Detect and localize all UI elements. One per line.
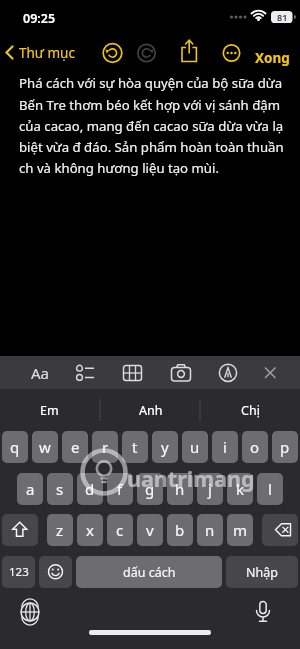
button[interactable]	[132, 38, 161, 66]
button[interactable]	[2, 514, 38, 546]
button[interactable]: y	[152, 431, 178, 463]
staticText: Aa	[31, 363, 50, 383]
button[interactable]: f	[107, 473, 133, 505]
button[interactable]	[262, 514, 298, 546]
staticText: v	[146, 520, 154, 540]
staticText: dấu cách	[123, 564, 176, 581]
button[interactable]: 123	[2, 556, 35, 588]
button[interactable]: Nhập	[226, 556, 298, 588]
staticText: x	[86, 520, 94, 540]
staticText: i	[223, 437, 227, 457]
button[interactable]: w	[32, 431, 58, 463]
staticText: b	[175, 520, 185, 540]
staticText: n	[205, 520, 215, 540]
staticText: Xong	[255, 49, 290, 67]
button[interactable]: Em	[0, 392, 99, 428]
button[interactable]: p	[272, 431, 298, 463]
button[interactable]: dấu cách	[76, 556, 222, 588]
button[interactable]: k	[227, 473, 253, 505]
button[interactable]: t	[122, 431, 148, 463]
staticText: 09:25	[23, 10, 56, 27]
staticText: e	[71, 437, 80, 457]
staticText: l	[268, 479, 272, 499]
button[interactable]	[12, 594, 48, 630]
staticText: s	[56, 479, 64, 499]
button[interactable]	[245, 594, 281, 630]
staticText: k	[236, 479, 245, 499]
staticText: f	[117, 479, 123, 499]
button[interactable]: j	[197, 473, 223, 505]
staticText: z	[56, 520, 64, 540]
button[interactable]: l	[257, 473, 283, 505]
button[interactable]: q	[2, 431, 28, 463]
button[interactable]: b	[167, 514, 193, 546]
button[interactable]: i	[212, 431, 238, 463]
staticText: w	[39, 437, 51, 457]
staticText: d	[85, 479, 95, 499]
button[interactable]	[119, 360, 146, 386]
button[interactable]	[214, 360, 242, 386]
button[interactable]: u	[182, 431, 208, 463]
button[interactable]: g	[137, 473, 163, 505]
button[interactable]	[167, 360, 195, 386]
button[interactable]	[98, 38, 127, 66]
staticText: 81	[277, 11, 288, 23]
button[interactable]: o	[242, 431, 268, 463]
staticText: Em	[40, 402, 59, 419]
button[interactable]	[258, 360, 283, 386]
button[interactable]: c	[107, 514, 133, 546]
staticText: Anh	[139, 402, 163, 419]
staticText: h	[175, 479, 185, 499]
button[interactable]: Aa	[27, 360, 54, 386]
button[interactable]: Xong	[250, 38, 296, 66]
staticText: Thư mục	[19, 44, 75, 62]
staticText: c	[116, 520, 124, 540]
button[interactable]: v	[137, 514, 163, 546]
button[interactable]	[217, 38, 246, 66]
button[interactable]: n	[197, 514, 223, 546]
staticText: t	[132, 437, 138, 457]
button[interactable]: Thư mục	[0, 38, 84, 66]
staticText: y	[161, 437, 169, 457]
button[interactable]: m	[227, 514, 253, 546]
staticText: Phá cách với sự hòa quyện của bộ sữa dừa…	[19, 74, 284, 177]
staticText: g	[145, 479, 155, 499]
staticText: m	[233, 520, 248, 540]
button[interactable]	[72, 360, 99, 386]
staticText: 123	[9, 564, 29, 580]
staticText: j	[208, 479, 212, 499]
staticText: a	[26, 479, 35, 499]
staticText: p	[280, 437, 290, 457]
button[interactable]: d	[77, 473, 103, 505]
staticText: uantrimang	[127, 464, 255, 493]
staticText: Chị	[241, 402, 260, 419]
button[interactable]: Anh	[101, 392, 200, 428]
button[interactable]: s	[47, 473, 73, 505]
button[interactable]: a	[17, 473, 43, 505]
button[interactable]: e	[62, 431, 88, 463]
staticText: Nhập	[246, 564, 278, 581]
button[interactable]: h	[167, 473, 193, 505]
button[interactable]	[39, 556, 72, 588]
staticText: r	[102, 437, 109, 457]
staticText: q	[10, 437, 20, 457]
button[interactable]: x	[77, 514, 103, 546]
button[interactable]: Chị	[201, 392, 300, 428]
staticText: o	[250, 437, 260, 457]
button[interactable]: r	[92, 431, 118, 463]
staticText: u	[190, 437, 200, 457]
button[interactable]	[175, 36, 204, 66]
button[interactable]: z	[47, 514, 73, 546]
